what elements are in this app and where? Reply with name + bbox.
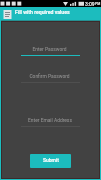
staticText: PM [95,2,101,6]
staticText: Enter Password [32,46,67,52]
staticText: 3:09 [85,1,95,7]
staticText: Submit [43,157,59,163]
staticText: Enter Email Address [28,117,72,123]
button[interactable]: Confirm Password [21,73,80,83]
staticText: Fill with required values [15,9,70,15]
button[interactable]: Enter Email Address [21,117,80,127]
other: App icon [3,10,12,19]
button[interactable]: Submit [30,154,71,168]
staticText: Confirm Password [29,73,70,79]
button[interactable]: Enter Password [21,46,80,56]
